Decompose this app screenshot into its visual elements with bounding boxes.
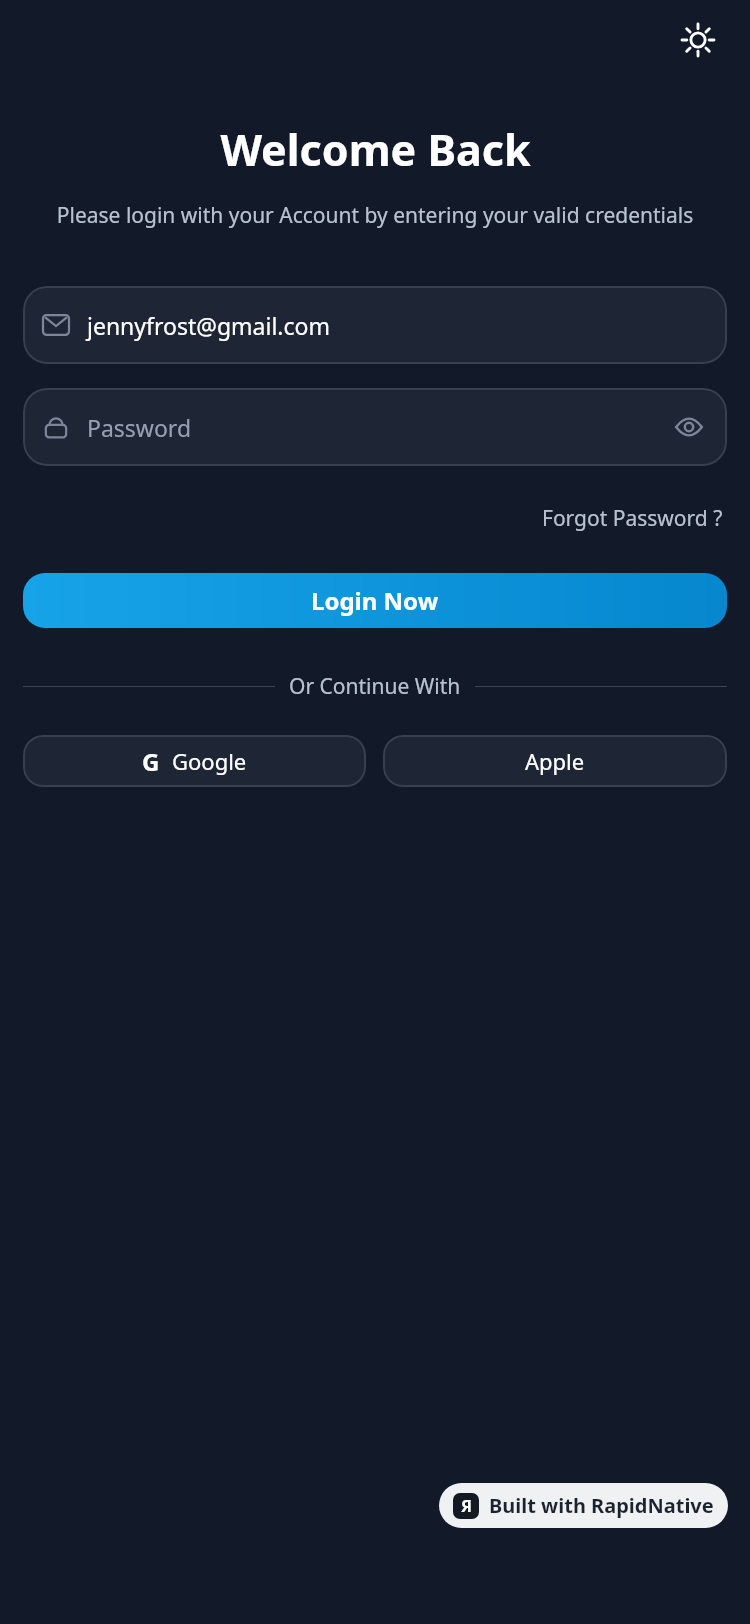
staticText: Welcome Back xyxy=(220,120,531,179)
staticText: Or Continue With xyxy=(289,672,461,701)
staticText: Google xyxy=(172,746,247,776)
button[interactable]: Toggle light mode xyxy=(672,14,724,66)
staticText: Apple xyxy=(525,746,585,776)
staticText: G xyxy=(142,745,160,778)
button[interactable]: Show password xyxy=(669,407,709,447)
button[interactable]: Apple xyxy=(383,735,727,787)
button[interactable]: jennyfrost@gmail.com xyxy=(23,286,727,364)
staticText: Built with RapidNative xyxy=(489,1492,714,1519)
staticText: jennyfrost@gmail.com xyxy=(87,310,330,341)
button[interactable]: G xyxy=(23,735,366,787)
staticText: Я xyxy=(461,1495,472,1517)
button[interactable]: Я xyxy=(439,1483,728,1528)
staticText: Please login with your Account by enteri… xyxy=(28,201,722,230)
button[interactable]: Login Now xyxy=(23,573,727,628)
button[interactable]: Password xyxy=(23,388,727,466)
staticText: Forgot Password ? xyxy=(542,504,723,533)
staticText: Password xyxy=(87,412,669,443)
button[interactable]: Forgot Password ? xyxy=(538,500,727,537)
staticText: Login Now xyxy=(311,584,439,617)
